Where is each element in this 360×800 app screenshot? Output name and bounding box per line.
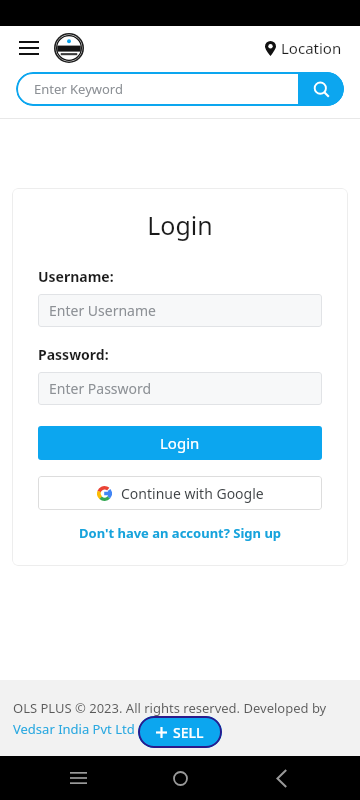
staticText: Continue with Google	[121, 484, 264, 503]
staticText: Login	[38, 208, 322, 242]
staticText: OLS PLUS © 2023. All rights reserved. De…	[13, 699, 327, 717]
staticText: Enter Keyword	[34, 80, 123, 98]
staticText: Location	[281, 38, 342, 58]
button[interactable]: Enter Keyword	[16, 72, 344, 106]
staticText: Username:	[38, 267, 114, 286]
staticText: Don't have an account? Sign up	[79, 524, 282, 542]
button[interactable]: Recent apps	[54, 756, 102, 800]
staticText: Login	[160, 433, 200, 453]
staticText: SELL	[173, 723, 204, 742]
button[interactable]: SELL	[138, 716, 222, 748]
button[interactable]: Home	[156, 756, 204, 800]
button[interactable]: Enter Password	[38, 372, 322, 405]
button[interactable]: Back	[258, 756, 306, 800]
button[interactable]: Search	[298, 72, 344, 106]
button[interactable]: Enter Username	[38, 294, 322, 327]
button[interactable]: Login	[38, 426, 322, 460]
staticText: Enter Username	[49, 301, 156, 320]
staticText: Password:	[38, 345, 109, 364]
button[interactable]: OLS Plus home	[54, 33, 84, 63]
button[interactable]: Don't have an account? Sign up	[38, 524, 322, 542]
button[interactable]: Location	[261, 34, 346, 62]
button[interactable]: Vedsar India Pvt Ltd	[13, 720, 135, 738]
staticText: Enter Password	[49, 379, 152, 398]
button[interactable]: Open menu	[14, 33, 44, 63]
button[interactable]: Continue with Google	[38, 476, 322, 510]
